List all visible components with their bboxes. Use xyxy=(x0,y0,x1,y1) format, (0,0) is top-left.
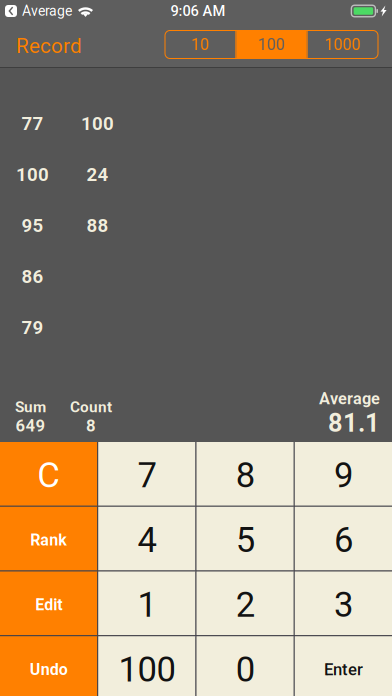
staticText: 0 xyxy=(236,649,255,690)
staticText: 100 xyxy=(118,649,175,690)
button[interactable]: 3 xyxy=(295,571,392,635)
button[interactable]: 2 xyxy=(196,571,294,635)
button[interactable]: 5 xyxy=(196,507,294,571)
staticText: 1 xyxy=(137,585,156,625)
staticText: 95 xyxy=(21,215,43,236)
button[interactable]: Record xyxy=(0,22,98,67)
button[interactable]: 9 xyxy=(295,442,392,506)
staticText: Count xyxy=(70,398,112,416)
staticText: Edit xyxy=(35,595,62,614)
button[interactable]: Edit xyxy=(0,571,97,635)
button[interactable]: 8 xyxy=(196,442,294,506)
staticText: Sum xyxy=(15,398,46,416)
staticText: 100 xyxy=(16,164,49,185)
staticText: 3 xyxy=(334,585,353,625)
staticText: Rank xyxy=(30,531,67,550)
staticText: Enter xyxy=(324,660,363,679)
staticText: 8 xyxy=(86,416,96,436)
button[interactable]: C xyxy=(0,442,97,506)
staticText: 88 xyxy=(86,215,108,236)
button[interactable]: Back to Average xyxy=(0,0,72,22)
button[interactable]: Undo xyxy=(0,636,97,696)
staticText: 8 xyxy=(236,455,255,496)
staticText: 79 xyxy=(21,317,43,338)
button[interactable]: 0 xyxy=(196,636,294,696)
staticText: 649 xyxy=(15,416,45,436)
staticText: 100 xyxy=(258,35,285,54)
staticText: Average xyxy=(319,389,380,408)
button[interactable]: 100 xyxy=(236,30,307,58)
staticText: 7 xyxy=(137,455,156,496)
staticText: Average xyxy=(22,3,72,19)
staticText: 86 xyxy=(21,266,43,287)
staticText: C xyxy=(37,455,60,496)
staticText: 10 xyxy=(191,35,209,54)
button[interactable]: Enter xyxy=(295,636,392,696)
staticText: 77 xyxy=(21,113,43,134)
staticText: 1000 xyxy=(325,35,361,54)
staticText: 6 xyxy=(334,520,353,560)
staticText: 9:06 AM xyxy=(170,2,225,20)
staticText: Undo xyxy=(30,660,68,679)
button[interactable]: 100 xyxy=(98,636,195,696)
button[interactable]: 1000 xyxy=(308,30,378,58)
button[interactable]: 7 xyxy=(98,442,195,506)
staticText: Record xyxy=(16,34,82,58)
button[interactable]: 6 xyxy=(295,507,392,571)
staticText: 4 xyxy=(137,520,156,560)
staticText: 5 xyxy=(236,520,255,560)
staticText: 24 xyxy=(86,164,108,185)
button[interactable]: 1 xyxy=(98,571,195,635)
button[interactable]: 10 xyxy=(165,30,235,58)
button[interactable]: Rank xyxy=(0,507,97,571)
button[interactable]: 4 xyxy=(98,507,195,571)
staticText: 2 xyxy=(236,585,255,625)
staticText: 81.1 xyxy=(328,408,380,438)
staticText: 9 xyxy=(334,455,353,496)
staticText: 100 xyxy=(81,113,114,134)
